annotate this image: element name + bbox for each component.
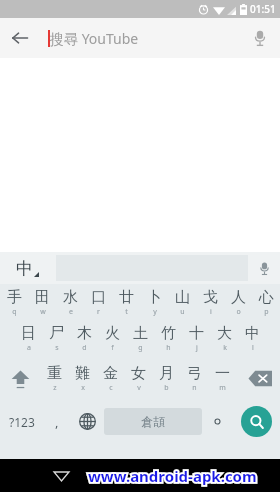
button[interactable]: Voice search	[240, 18, 280, 58]
staticText: 十	[189, 324, 204, 343]
staticText: ,	[55, 413, 59, 431]
button[interactable]: 尸	[42, 320, 70, 357]
button[interactable]: 心	[252, 284, 280, 320]
button[interactable]: 大	[210, 320, 238, 357]
staticText: g	[138, 343, 143, 353]
staticText: c	[109, 383, 113, 393]
staticText: x	[81, 383, 85, 393]
button[interactable]: Change language	[70, 399, 104, 444]
button[interactable]: 火	[98, 320, 126, 357]
staticText: 土	[133, 324, 148, 343]
button[interactable]: Hide keyboard	[46, 461, 76, 491]
button[interactable]: 人	[224, 284, 252, 320]
staticText: l	[252, 343, 254, 353]
button[interactable]: 日	[14, 320, 42, 357]
staticText: a	[27, 343, 31, 353]
staticText: v	[137, 383, 141, 393]
button[interactable]: 重	[40, 357, 68, 399]
staticText: k	[223, 343, 227, 353]
staticText: 01:51	[250, 2, 276, 16]
staticText: 口	[91, 288, 106, 307]
button[interactable]: 月	[152, 357, 180, 399]
staticText: 倉頡	[141, 414, 165, 429]
staticText: 火	[105, 324, 120, 343]
button[interactable]: 土	[126, 320, 154, 357]
button[interactable]: 女	[124, 357, 152, 399]
staticText: f	[111, 343, 114, 353]
button[interactable]: 水	[56, 284, 84, 320]
staticText: 大	[217, 324, 232, 343]
staticText: www.android-apk.com	[88, 466, 257, 486]
button[interactable]: 弓	[180, 357, 208, 399]
staticText: 廿	[119, 288, 134, 307]
button[interactable]: 十	[182, 320, 210, 357]
button[interactable]: 一	[208, 357, 236, 399]
staticText: p	[264, 307, 269, 317]
staticText: m	[219, 383, 226, 393]
button[interactable]: 口	[84, 284, 112, 320]
button[interactable]: 難	[68, 357, 96, 399]
staticText: 戈	[203, 288, 218, 307]
staticText: q	[12, 307, 17, 317]
staticText: 弓	[187, 364, 202, 383]
staticText: u	[180, 307, 185, 317]
staticText: s	[55, 343, 59, 353]
staticText: o	[236, 307, 241, 317]
button[interactable]: 田	[28, 284, 56, 320]
button[interactable]	[202, 399, 232, 444]
button[interactable]: 戈	[196, 284, 224, 320]
staticText: t	[125, 307, 128, 317]
staticText: 竹	[161, 324, 176, 343]
button[interactable]: Shift	[0, 357, 40, 399]
staticText: 一	[215, 364, 230, 383]
staticText: 水	[63, 288, 78, 307]
staticText: r	[97, 307, 100, 317]
staticText: 心	[259, 288, 274, 307]
staticText: 尸	[49, 324, 64, 343]
staticText: y	[153, 307, 157, 317]
staticText: 女	[131, 364, 146, 383]
staticText: h	[166, 343, 171, 353]
staticText: d	[82, 343, 87, 353]
button[interactable]: 竹	[154, 320, 182, 357]
button[interactable]: 手	[0, 284, 28, 320]
staticText: n	[192, 383, 197, 393]
staticText: 金	[103, 364, 118, 383]
staticText: e	[69, 307, 73, 317]
staticText: 木	[77, 324, 92, 343]
staticText: 田	[35, 288, 50, 307]
staticText: 難	[75, 364, 90, 383]
staticText: 月	[159, 364, 174, 383]
button[interactable]: 中	[0, 252, 55, 284]
button[interactable]: Backspace	[240, 357, 280, 399]
button[interactable]: ?123	[0, 399, 44, 444]
staticText: 重	[47, 364, 62, 383]
button[interactable]: 金	[96, 357, 124, 399]
staticText: 人	[231, 288, 246, 307]
staticText: 搜尋 YouTube	[50, 29, 139, 48]
button[interactable]: 廿	[112, 284, 140, 320]
staticText: 日	[21, 324, 36, 343]
staticText: 手	[7, 288, 22, 307]
staticText: ?123	[9, 414, 35, 430]
staticText: 中	[16, 258, 33, 279]
staticText: w	[40, 307, 46, 317]
button[interactable]: Back	[0, 18, 40, 58]
staticText: i	[210, 307, 212, 317]
staticText: 中	[245, 324, 260, 343]
button[interactable]: 卜	[140, 284, 168, 320]
staticText: 卜	[147, 288, 162, 307]
staticText: z	[53, 383, 57, 393]
button[interactable]: 山	[168, 284, 196, 320]
staticText: b	[164, 383, 169, 393]
button[interactable]: 木	[70, 320, 98, 357]
staticText: j	[196, 343, 198, 353]
staticText: 山	[175, 288, 190, 307]
button[interactable]: Voice input	[248, 252, 280, 284]
button[interactable]: ,	[44, 399, 70, 444]
button[interactable]: 倉頡	[104, 408, 202, 435]
button[interactable]: 中	[238, 320, 266, 357]
button[interactable]: Search	[232, 399, 280, 444]
staticText: www.android-apk.com	[88, 466, 257, 486]
